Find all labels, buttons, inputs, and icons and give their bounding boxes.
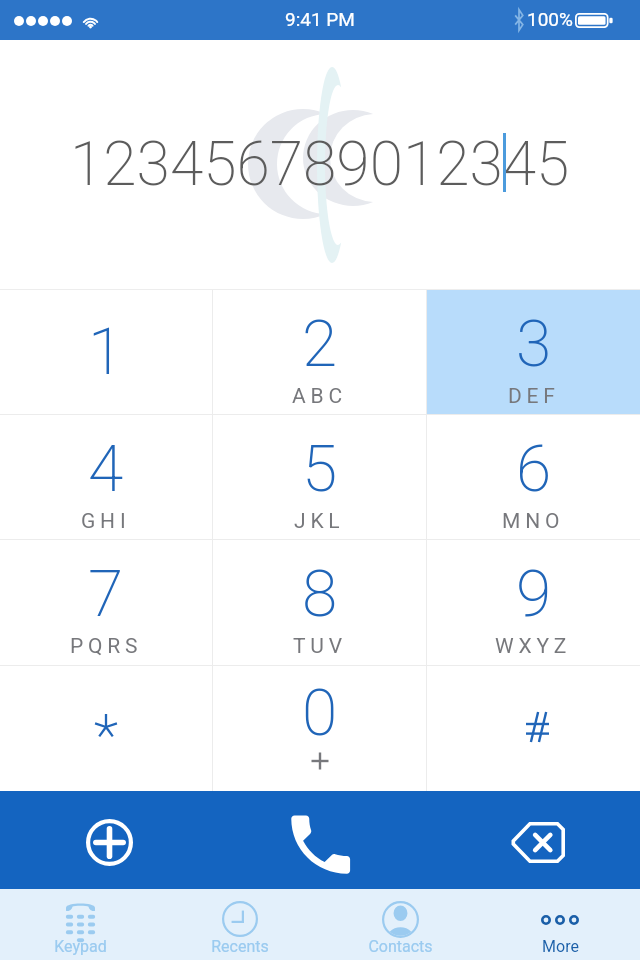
staticText: 9 (516, 557, 552, 632)
button[interactable]: 8 (213, 540, 426, 665)
staticText: 100% (527, 8, 573, 30)
staticText: GHI (81, 509, 131, 534)
button[interactable]: Delete (427, 791, 640, 889)
button[interactable]: 6 (427, 415, 640, 539)
button[interactable]: More (480, 889, 640, 960)
staticText: JKL (294, 509, 345, 534)
staticText: 0 (302, 676, 338, 751)
staticText: MNO (502, 509, 565, 534)
staticText: 7 (88, 557, 124, 632)
staticText: 8 (302, 557, 338, 632)
staticText: TUV (293, 634, 347, 659)
button[interactable]: Add contact (0, 791, 214, 889)
button[interactable]: 9 (427, 540, 640, 665)
staticText: Contacts (368, 937, 433, 956)
staticText: 6 (516, 432, 552, 507)
button[interactable]: Recents (160, 889, 320, 960)
button[interactable]: 2 (213, 290, 426, 414)
staticText: WXYZ (495, 634, 572, 659)
button[interactable]: Contacts (320, 889, 480, 960)
button[interactable]: 0 (213, 666, 426, 791)
staticText: 4 (88, 432, 124, 507)
button[interactable]: 5 (213, 415, 426, 539)
staticText: Keypad (54, 937, 107, 956)
staticText: DEF (508, 384, 560, 409)
button[interactable] (427, 666, 640, 791)
button[interactable]: 4 (0, 415, 212, 539)
button[interactable]: 1 (0, 290, 212, 414)
staticText: 5 (302, 432, 338, 507)
staticText: Recents (211, 937, 269, 956)
button[interactable]: Keypad (0, 889, 160, 960)
staticText: 123456789012345 (70, 129, 570, 200)
staticText: 2 (302, 307, 338, 382)
staticText: More (542, 937, 579, 956)
staticText: 3 (516, 307, 552, 382)
staticText: 1 (88, 315, 124, 390)
staticText: 9:41 PM (285, 8, 355, 30)
button[interactable]: 7 (0, 540, 212, 665)
button[interactable] (0, 666, 212, 791)
staticText: ABC (292, 384, 347, 409)
staticText: PQRS (70, 634, 143, 659)
button[interactable]: 3 (427, 290, 640, 414)
button[interactable]: Call (214, 791, 427, 889)
